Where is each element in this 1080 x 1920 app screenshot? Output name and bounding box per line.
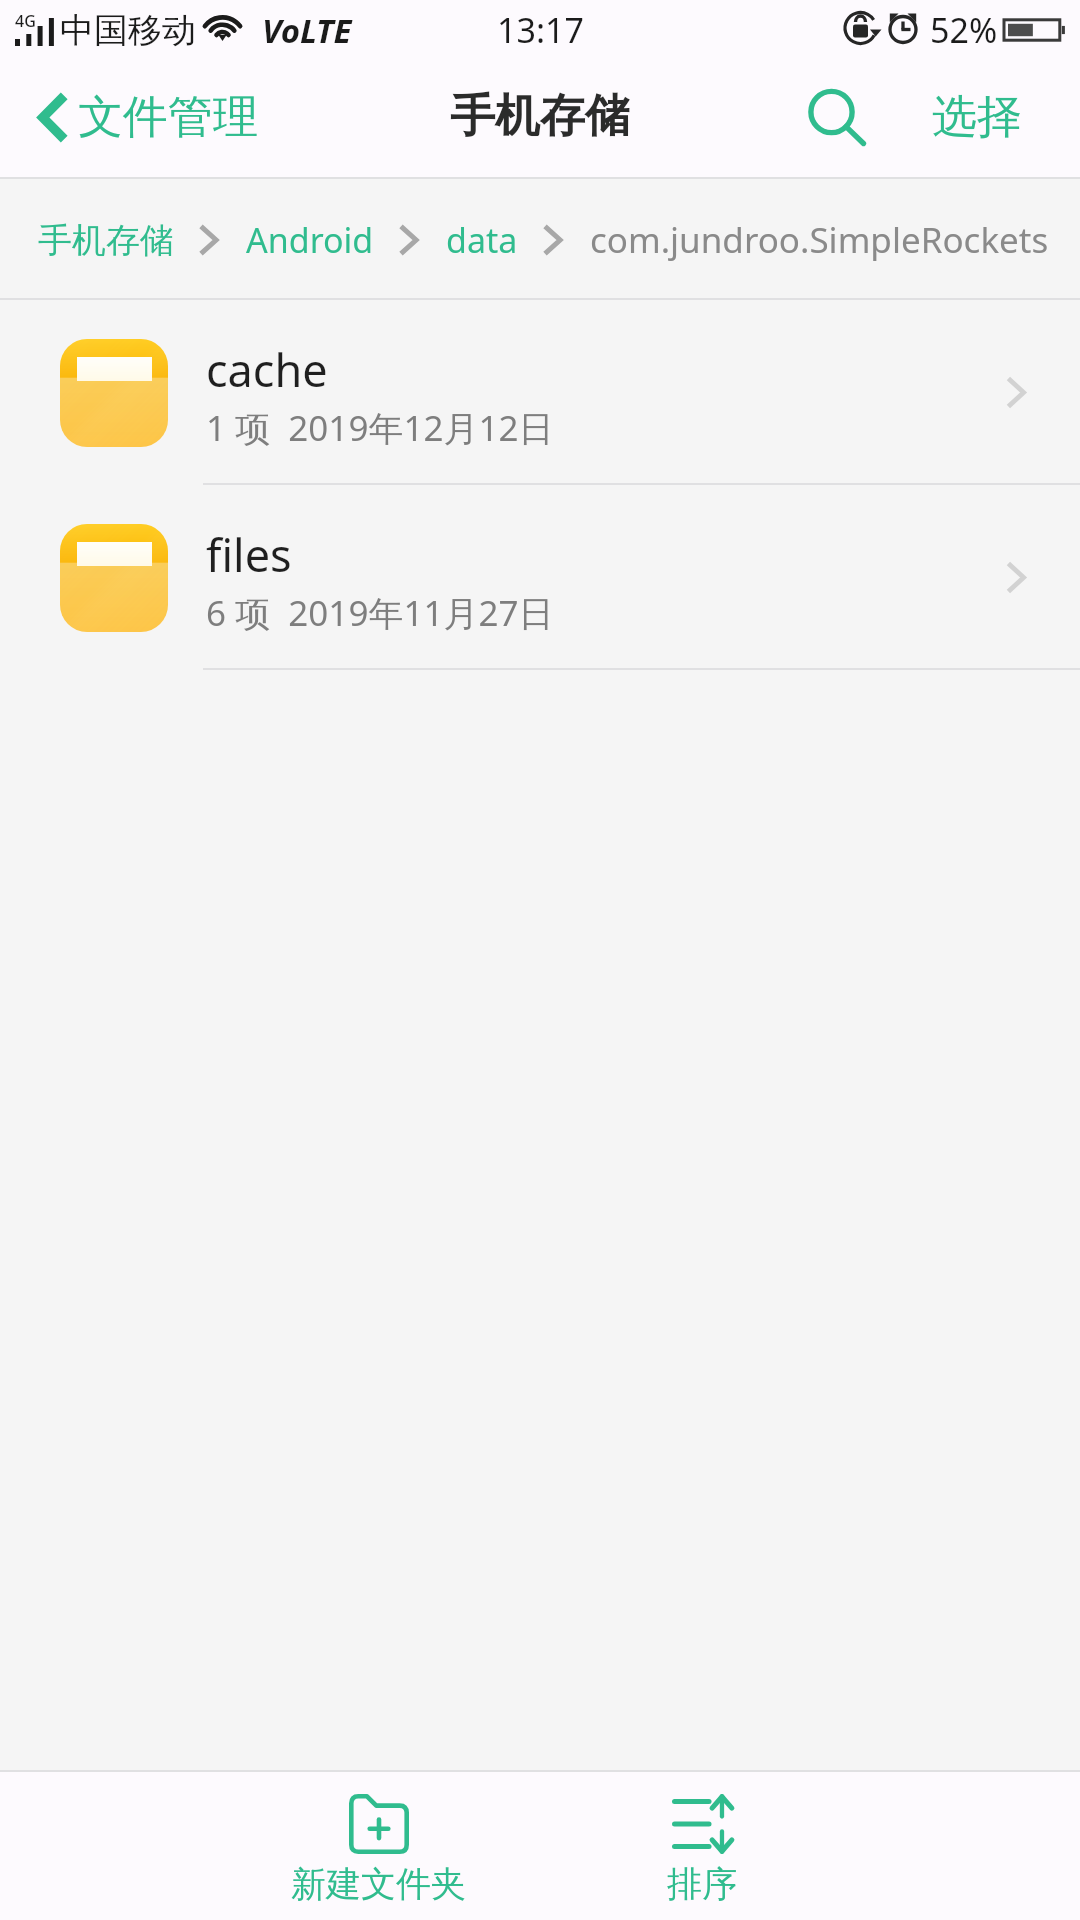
staticText: files: [206, 524, 292, 585]
button[interactable]: 手机存储: [38, 219, 174, 262]
staticText: 中国移动: [60, 9, 196, 52]
staticText: 4G: [15, 10, 36, 32]
staticText: 排序: [667, 1862, 737, 1906]
button[interactable]: 文件管理: [0, 60, 282, 179]
button[interactable]: 选择: [898, 60, 1080, 179]
staticText: com.jundroo.SimpleRockets: [590, 216, 1049, 264]
staticText: 1 项 2019年12月12日: [206, 404, 554, 452]
button[interactable]: cache: [0, 300, 1080, 485]
button[interactable]: 新建文件夹: [216, 1772, 540, 1920]
staticText: 6 项 2019年11月27日: [206, 589, 554, 637]
staticText: VoLTE: [262, 8, 352, 53]
staticText: cache: [206, 339, 328, 400]
staticText: 文件管理: [78, 89, 258, 146]
staticText: 手机存储: [450, 88, 630, 145]
staticText: 13:17: [497, 7, 584, 53]
staticText: 52%: [930, 7, 998, 53]
staticText: 选择: [932, 89, 1022, 146]
button[interactable]: 排序: [540, 1772, 864, 1920]
staticText: 新建文件夹: [291, 1862, 466, 1906]
button[interactable]: files: [0, 485, 1080, 670]
button[interactable]: data: [446, 217, 518, 263]
button[interactable]: Android: [246, 217, 374, 263]
button[interactable]: 搜索: [791, 60, 887, 179]
